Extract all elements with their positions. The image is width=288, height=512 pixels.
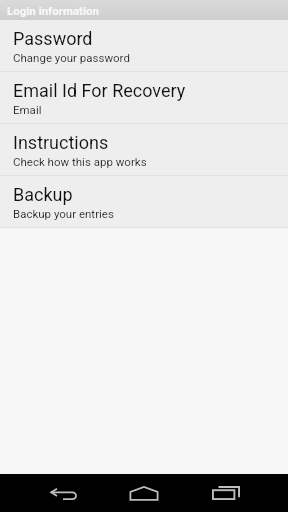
staticText: Check how this app works — [13, 155, 147, 168]
button[interactable]: Recent apps — [211, 474, 241, 512]
button[interactable]: Password — [0, 20, 288, 72]
staticText: Email Id For Recovery — [13, 80, 186, 101]
button[interactable]: Email Id For Recovery — [0, 72, 288, 124]
button[interactable]: Home — [129, 474, 159, 512]
staticText: Password — [13, 28, 93, 49]
staticText: Backup — [13, 184, 73, 205]
staticText: Change your password — [13, 51, 130, 64]
staticText: Instructions — [13, 132, 109, 153]
button[interactable]: Backup — [0, 176, 288, 228]
button[interactable]: Back — [48, 474, 78, 512]
staticText: Email — [13, 103, 42, 116]
staticText: Backup your entries — [13, 207, 114, 220]
button[interactable]: Instructions — [0, 124, 288, 176]
staticText: Login information — [7, 4, 99, 17]
